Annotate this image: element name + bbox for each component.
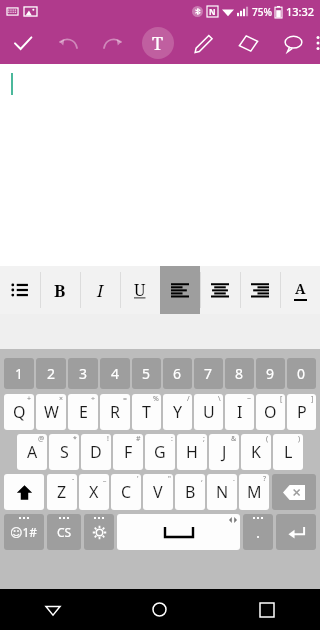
button[interactable]: More options <box>316 22 320 64</box>
button[interactable]: E <box>68 394 98 430</box>
button[interactable]: N <box>207 474 237 510</box>
staticText: Q <box>13 401 26 423</box>
button[interactable]: 9 <box>256 358 285 389</box>
button[interactable]: R <box>100 394 130 430</box>
staticText: 7 <box>204 364 213 383</box>
staticText: H <box>186 441 198 463</box>
button[interactable]: Backspace <box>272 474 316 510</box>
staticText: 9 <box>266 364 275 383</box>
button[interactable]: Redo <box>90 22 135 64</box>
button[interactable]: Shift <box>4 474 44 510</box>
staticText: K <box>251 441 261 463</box>
staticText: 13:32 <box>286 4 315 19</box>
button[interactable]: Enter <box>276 514 316 550</box>
button[interactable]: P <box>287 394 316 430</box>
button[interactable]: Back <box>0 589 106 630</box>
button[interactable] <box>0 64 320 266</box>
button[interactable] <box>0 266 40 314</box>
button[interactable]: Recents <box>213 589 320 630</box>
button[interactable]: Text <box>135 22 181 64</box>
button[interactable]: 6 <box>163 358 192 389</box>
staticText: U <box>203 401 215 423</box>
button[interactable]: Settings <box>84 514 114 550</box>
button[interactable]: U <box>120 266 160 314</box>
button[interactable]: Q <box>4 394 34 430</box>
staticText: L <box>284 441 293 463</box>
button[interactable]: O <box>256 394 285 430</box>
staticText: 5 <box>142 364 151 383</box>
button[interactable]: F <box>113 434 143 470</box>
button[interactable]: Space <box>117 514 240 550</box>
button[interactable] <box>200 266 240 314</box>
staticText: * <box>73 434 77 444</box>
button[interactable]: A <box>280 266 320 314</box>
button[interactable]: G <box>145 434 175 470</box>
staticText: T <box>152 31 164 56</box>
staticText: D <box>90 441 102 463</box>
button[interactable]: T <box>132 394 161 430</box>
button[interactable]: . <box>243 514 273 550</box>
button[interactable]: D <box>81 434 111 470</box>
staticText: 75% <box>252 5 272 19</box>
button[interactable]: U <box>194 394 223 430</box>
button[interactable]: B <box>175 474 205 510</box>
staticText: 3 <box>79 364 88 383</box>
button[interactable]: H <box>177 434 207 470</box>
button[interactable]: W <box>36 394 66 430</box>
button[interactable]: 3 <box>68 358 98 389</box>
button[interactable]: Done <box>0 22 45 64</box>
staticText: ; <box>203 434 205 444</box>
button[interactable]: CS <box>47 514 81 550</box>
button[interactable]: V <box>143 474 173 510</box>
button[interactable]: S <box>49 434 79 470</box>
staticText: 2 <box>47 364 56 383</box>
staticText: ( <box>266 434 269 444</box>
staticText: 8 <box>235 364 244 383</box>
staticText: % <box>153 394 159 404</box>
button[interactable]: Comment <box>271 22 316 64</box>
button[interactable]: L <box>273 434 303 470</box>
staticText: X <box>89 481 99 503</box>
button[interactable]: Z <box>47 474 77 510</box>
button[interactable]: ☺1# <box>4 514 44 550</box>
staticText: _ <box>103 474 107 484</box>
button[interactable] <box>160 266 200 314</box>
button[interactable]: K <box>241 434 271 470</box>
staticText: = <box>123 394 128 404</box>
staticText: ' <box>137 474 139 484</box>
button[interactable] <box>240 266 280 314</box>
button[interactable]: 7 <box>194 358 223 389</box>
staticText: ! <box>107 434 109 444</box>
button[interactable]: Draw <box>181 22 226 64</box>
button[interactable]: 0 <box>287 358 316 389</box>
button[interactable]: Erase <box>226 22 271 64</box>
button[interactable]: I <box>80 266 120 314</box>
button[interactable]: M <box>239 474 269 510</box>
staticText: G <box>154 441 166 463</box>
staticText: . <box>256 522 261 542</box>
staticText: N <box>209 6 216 17</box>
button[interactable]: 2 <box>36 358 66 389</box>
button[interactable]: A <box>17 434 47 470</box>
button[interactable]: Home <box>106 589 213 630</box>
staticText: C <box>121 481 132 503</box>
button[interactable]: Undo <box>45 22 90 64</box>
staticText: O <box>264 401 277 423</box>
button[interactable]: 5 <box>132 358 161 389</box>
staticText: . <box>233 474 235 484</box>
button[interactable]: 8 <box>225 358 254 389</box>
button[interactable]: 1 <box>4 358 34 389</box>
button[interactable]: B <box>40 266 80 314</box>
button[interactable]: Y <box>163 394 192 430</box>
button[interactable]: C <box>111 474 141 510</box>
staticText: / <box>187 394 190 404</box>
staticText: B <box>185 481 196 503</box>
staticText: ] <box>311 394 314 404</box>
button[interactable]: 4 <box>100 358 130 389</box>
staticText: A <box>27 441 38 463</box>
staticText: A <box>295 279 306 298</box>
staticText: # <box>136 434 141 444</box>
button[interactable]: J <box>209 434 239 470</box>
button[interactable]: I <box>225 394 254 430</box>
button[interactable]: X <box>79 474 109 510</box>
